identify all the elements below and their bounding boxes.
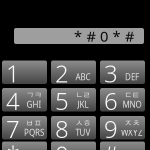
staticText: ㄷㅌ [124, 91, 140, 99]
staticText: 0 [100, 26, 108, 46]
staticText: 7 [6, 113, 20, 145]
button[interactable]: # [99, 141, 145, 150]
staticText: WXYZ [121, 127, 143, 138]
button[interactable]: 6 [99, 87, 145, 112]
staticText: JKL [77, 99, 88, 110]
staticText: GHI [26, 99, 41, 110]
staticText: ㄱㅋ [26, 91, 42, 99]
staticText: PQRS [24, 127, 44, 138]
button[interactable]: 7 [1, 115, 47, 140]
button[interactable]: 3 [99, 60, 145, 84]
staticText: * [74, 26, 82, 46]
staticText: 1 [6, 57, 20, 89]
staticText: ㅂㅍ [26, 119, 42, 127]
staticText: # [125, 26, 134, 46]
button[interactable]: 0 [50, 141, 96, 150]
staticText: DEF [125, 72, 139, 82]
staticText: * [6, 138, 19, 150]
staticText: 4 [6, 85, 20, 117]
staticText: 5 [55, 85, 69, 117]
staticText: TUV [75, 127, 90, 138]
button[interactable]: * [1, 141, 47, 150]
staticText: ㄴㄹ [75, 91, 91, 99]
staticText: # [86, 26, 95, 46]
staticText: 6 [104, 85, 118, 117]
staticText: 9 [104, 113, 118, 145]
button[interactable]: 2 [50, 60, 96, 84]
button[interactable]: 1 [1, 60, 47, 84]
staticText: 0 [55, 138, 69, 150]
button[interactable]: 4 [1, 87, 47, 112]
staticText: ㅈㅊ [124, 119, 140, 127]
staticText: 2 [55, 57, 69, 89]
staticText: MNO [122, 99, 141, 110]
staticText: # [103, 138, 119, 150]
button[interactable]: 8 [50, 115, 96, 140]
staticText: ㅅㅎ [75, 119, 91, 127]
button[interactable]: 9 [99, 115, 145, 140]
staticText: * [112, 26, 120, 46]
staticText: 8 [55, 113, 69, 145]
button[interactable]: 5 [50, 87, 96, 112]
staticText: 3 [104, 57, 118, 89]
staticText: ABC [75, 72, 90, 82]
